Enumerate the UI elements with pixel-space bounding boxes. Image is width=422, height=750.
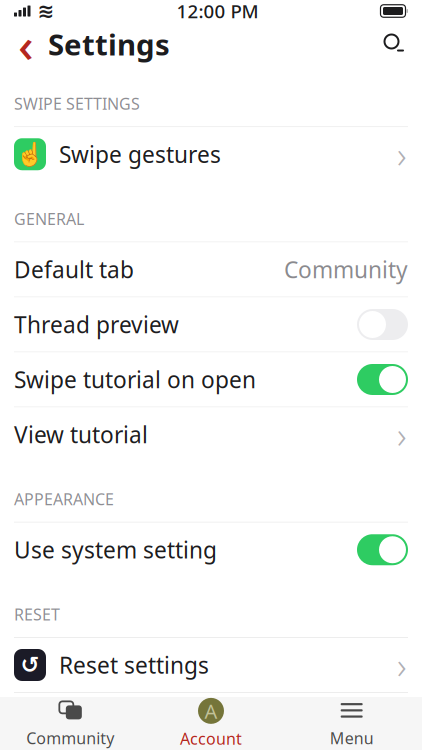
staticText: Thread preview [14, 309, 179, 339]
staticText: RESET [14, 604, 60, 625]
button[interactable]: Back [12, 23, 40, 65]
staticText: Use system setting [14, 535, 217, 565]
staticText: Default tab [14, 254, 134, 284]
button[interactable]: Search [378, 28, 410, 60]
staticText: › [397, 130, 407, 178]
button[interactable]: Menu [281, 697, 422, 750]
button[interactable]: Default tab [0, 242, 422, 296]
staticText: SWIPE SETTINGS [14, 93, 140, 114]
staticText: Swipe gestures [59, 139, 221, 169]
staticText: Account [180, 728, 242, 749]
button[interactable]: ↺ [0, 638, 422, 692]
staticText: ☝ [16, 141, 44, 167]
staticText: Settings [48, 24, 170, 63]
staticText: A [204, 698, 217, 724]
button[interactable]: A [141, 697, 281, 750]
staticText: APPEARANCE [14, 488, 114, 510]
staticText: Reset settings [59, 650, 209, 680]
staticText: ↺ [20, 652, 39, 678]
button[interactable]: ☝ [0, 127, 422, 181]
button[interactable]: View tutorial [0, 407, 422, 461]
staticText: Reset everything [59, 705, 238, 735]
staticText: Community [26, 727, 114, 749]
staticText: › [397, 641, 407, 689]
staticText: ↺ [20, 707, 39, 733]
button[interactable]: ↺ [0, 693, 422, 747]
staticText: Swipe tutorial on open [14, 364, 256, 394]
staticText: 12:00 PM [176, 0, 258, 23]
staticText: ≋ [37, 0, 54, 22]
staticText: › [397, 411, 407, 458]
button[interactable]: Swipe tutorial on open [0, 352, 422, 406]
staticText: Community [284, 254, 408, 284]
staticText: GENERAL [14, 208, 84, 229]
button[interactable]: Thread preview [0, 297, 422, 351]
staticText: ‹ [18, 12, 34, 76]
button[interactable]: Use system setting [0, 523, 422, 577]
staticText: Menu [330, 727, 374, 749]
staticText: View tutorial [14, 419, 148, 449]
button[interactable]: Community [0, 697, 141, 750]
